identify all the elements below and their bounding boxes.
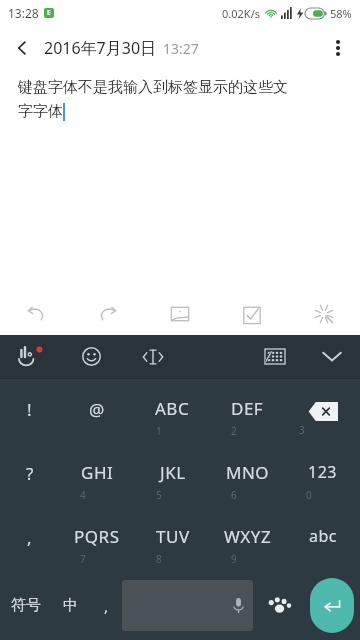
staticText: ABC: [155, 397, 190, 420]
button[interactable]: MNO: [210, 443, 285, 507]
staticText: 3: [299, 423, 305, 437]
staticText: 123: [308, 461, 337, 483]
button[interactable]: WXYZ: [210, 507, 285, 571]
button[interactable]: Move cursor: [120, 335, 186, 378]
button[interactable]: DEF: [210, 379, 285, 443]
staticText: 1: [156, 424, 162, 438]
button[interactable]: Switch keyboard: [246, 335, 304, 378]
button[interactable]: ABC: [135, 379, 210, 443]
staticText: 58%: [330, 6, 352, 21]
button[interactable]: ,: [90, 571, 122, 640]
staticText: 5: [156, 488, 162, 502]
staticText: DEF: [231, 397, 264, 420]
button[interactable]: Redo: [72, 293, 144, 335]
button[interactable]: 123: [285, 443, 360, 507]
button[interactable]: 中: [51, 571, 90, 640]
button[interactable]: 符号: [0, 571, 51, 640]
button[interactable]: Voice input: [253, 571, 304, 640]
staticText: 键盘字体不是我输入到标签显示的这些文: [18, 78, 288, 97]
button[interactable]: GHI: [59, 443, 135, 507]
button[interactable]: 3: [285, 379, 360, 443]
button[interactable]: Input method menu: [0, 335, 62, 378]
staticText: 7: [80, 552, 86, 566]
staticText: !: [27, 398, 32, 421]
staticText: 字字体: [18, 102, 63, 121]
button[interactable]: Effects: [288, 293, 360, 335]
button[interactable]: Undo: [0, 293, 72, 335]
staticText: 2: [231, 424, 237, 438]
staticText: abc: [309, 525, 337, 547]
staticText: JKL: [160, 461, 186, 484]
button[interactable]: TUV: [135, 507, 210, 571]
staticText: 13:27: [163, 39, 199, 58]
button[interactable]: 键盘字体不是我输入到标签显示的这些文: [0, 70, 360, 293]
staticText: 8: [156, 552, 162, 566]
staticText: 符号: [11, 596, 41, 615]
button[interactable]: !: [0, 379, 59, 443]
staticText: 0.02K/s: [222, 6, 260, 21]
button[interactable]: More options: [316, 26, 360, 70]
button[interactable]: Hide keyboard: [304, 335, 360, 378]
staticText: 9: [231, 552, 237, 566]
button[interactable]: ?: [0, 443, 59, 507]
staticText: 2016年7月30日: [44, 37, 157, 59]
staticText: PQRS: [74, 525, 120, 548]
button[interactable]: Back: [0, 26, 44, 70]
button[interactable]: JKL: [135, 443, 210, 507]
staticText: E: [47, 8, 51, 18]
staticText: 6: [231, 488, 237, 502]
button[interactable]: Space: [122, 580, 253, 631]
staticText: ?: [26, 462, 34, 485]
button[interactable]: Enter: [310, 578, 354, 633]
staticText: @: [89, 398, 105, 421]
staticText: 13:28: [8, 5, 39, 21]
staticText: 中: [63, 596, 78, 615]
button[interactable]: @: [59, 379, 135, 443]
staticText: 4: [80, 488, 86, 502]
button[interactable]: Checklist: [216, 293, 288, 335]
button[interactable]: PQRS: [59, 507, 135, 571]
button[interactable]: abc: [285, 507, 360, 571]
button[interactable]: Insert image: [144, 293, 216, 335]
staticText: WXYZ: [224, 525, 272, 548]
staticText: ,: [104, 596, 109, 616]
staticText: MNO: [226, 461, 270, 484]
other: Delete: [308, 402, 338, 421]
staticText: ,: [27, 526, 32, 549]
staticText: GHI: [81, 461, 114, 484]
staticText: TUV: [156, 525, 190, 548]
button[interactable]: Emoji: [62, 335, 120, 378]
staticText: 0: [306, 488, 312, 502]
button[interactable]: ,: [0, 507, 59, 571]
